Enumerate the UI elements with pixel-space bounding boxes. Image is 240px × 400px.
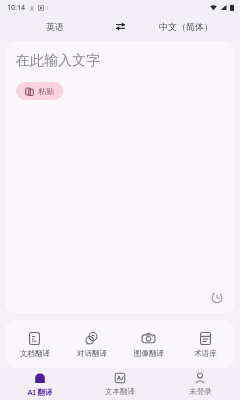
staticText: 中文（简体） bbox=[159, 21, 213, 32]
staticText: 文档翻译 bbox=[20, 349, 50, 358]
button[interactable]: Swap languages bbox=[109, 15, 131, 37]
button[interactable]: 对话翻译 bbox=[63, 320, 120, 368]
button[interactable]: AI 翻译 bbox=[0, 368, 80, 400]
button[interactable]: History bbox=[206, 287, 226, 307]
staticText: 未登录 bbox=[189, 387, 212, 396]
staticText: 图像翻译 bbox=[134, 349, 164, 358]
staticText: 文本翻译 bbox=[105, 387, 135, 396]
staticText: 在此输入文字 bbox=[16, 52, 100, 70]
button[interactable]: 在此输入文字 bbox=[6, 41, 234, 313]
button[interactable]: 文本翻译 bbox=[80, 368, 160, 400]
staticText: 10:14 bbox=[7, 3, 25, 13]
button[interactable]: 未登录 bbox=[160, 368, 240, 400]
staticText: AI 翻译 bbox=[27, 387, 53, 397]
staticText: 术语库 bbox=[194, 349, 217, 358]
button[interactable]: 粘贴 bbox=[16, 82, 63, 100]
staticText: 粘贴 bbox=[38, 86, 54, 96]
button[interactable]: 文档翻译 bbox=[6, 320, 63, 368]
button[interactable]: 术语库 bbox=[177, 320, 234, 368]
button[interactable]: 图像翻译 bbox=[120, 320, 177, 368]
button[interactable]: 中文（简体） bbox=[131, 15, 240, 37]
staticText: 对话翻译 bbox=[77, 349, 107, 358]
staticText: 英语 bbox=[46, 21, 64, 32]
button[interactable]: 英语 bbox=[0, 15, 109, 37]
